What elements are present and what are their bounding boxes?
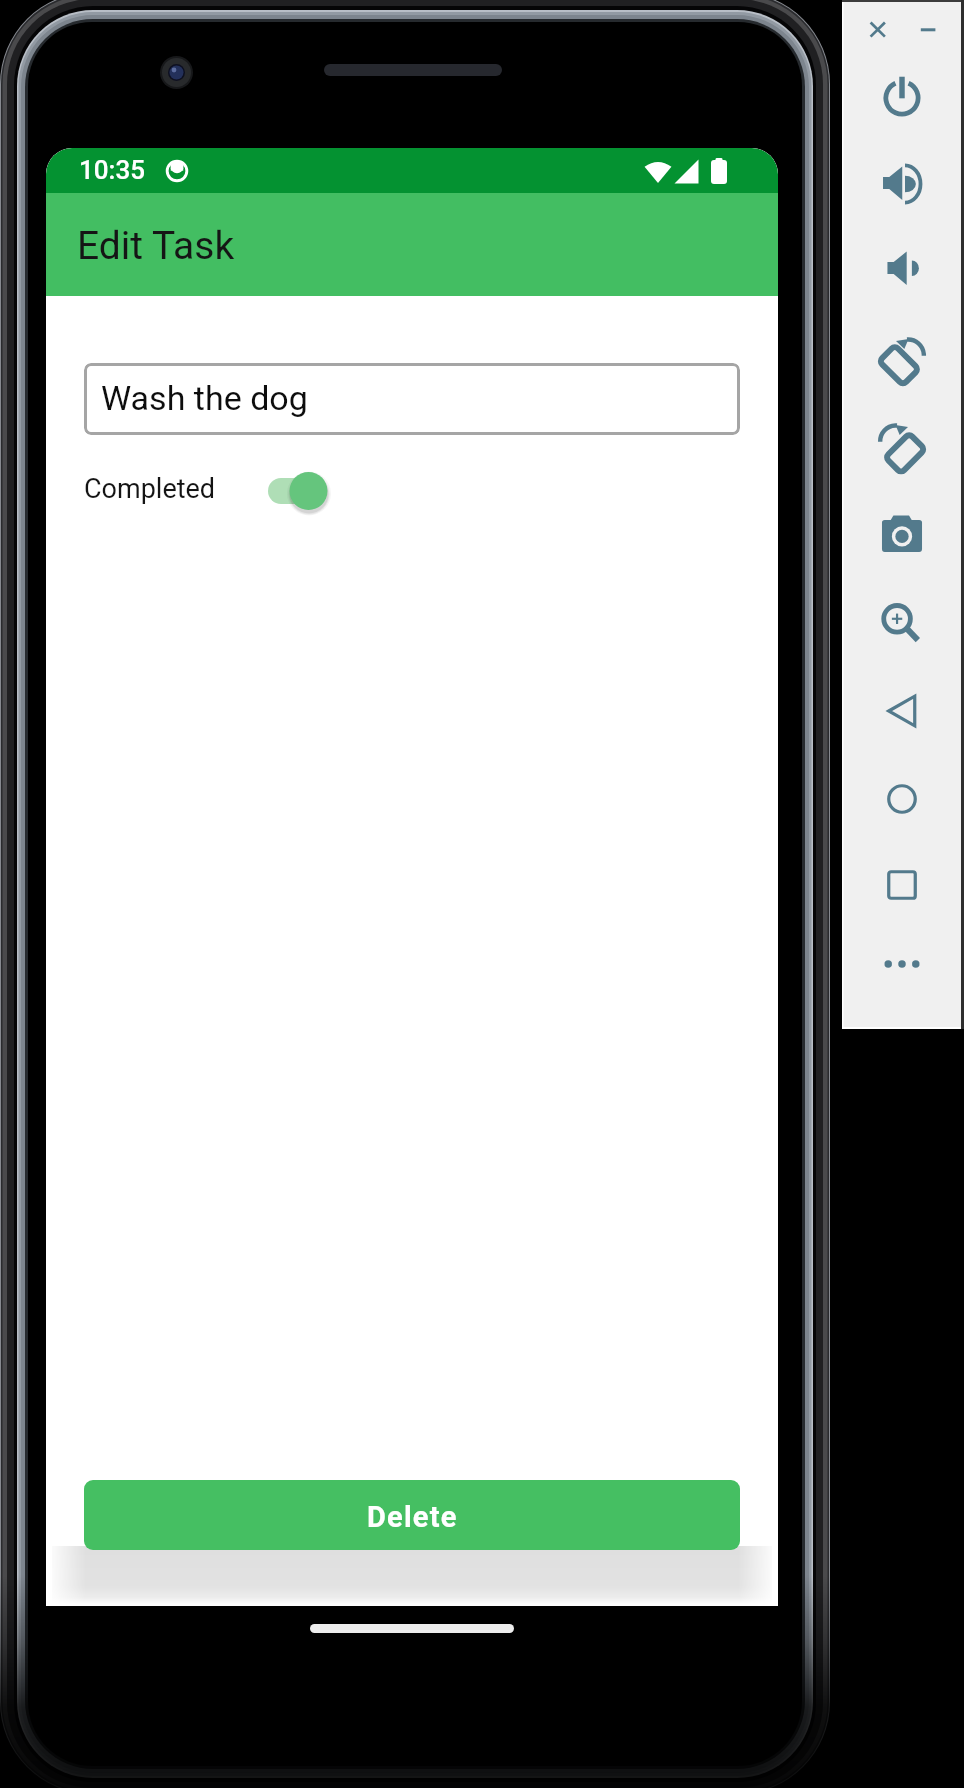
button[interactable]: Back [876,685,928,737]
button[interactable]: Minimize [912,14,944,46]
staticText: Delete [367,1500,458,1534]
button[interactable]: More [876,938,928,990]
button[interactable]: Rotate right [876,419,928,471]
button[interactable]: Overview [876,859,928,911]
button[interactable]: Take screenshot [876,507,928,559]
button[interactable]: Delete [84,1480,740,1550]
staticText: Edit Task [77,223,235,269]
button[interactable]: Zoom [876,592,928,644]
button[interactable]: Power [876,70,928,122]
button[interactable] [262,456,342,510]
button[interactable]: Close [862,14,894,46]
button[interactable]: Home [876,773,928,825]
staticText: Wash the dog [101,378,308,418]
button[interactable]: Volume down [876,242,928,294]
button[interactable]: Rotate left [876,333,928,385]
button[interactable]: Wash the dog [84,363,740,435]
staticText: Completed [84,473,216,505]
staticText: 10:35 [79,155,145,185]
button[interactable]: Volume up [876,157,928,209]
